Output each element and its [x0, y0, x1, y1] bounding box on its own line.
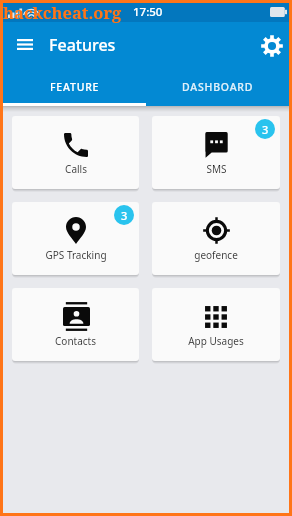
button[interactable]: FEATURE: [3, 70, 146, 103]
button[interactable]: DASHBOARD: [146, 70, 289, 103]
staticText: 3: [262, 122, 269, 137]
staticText: SMS: [206, 162, 227, 176]
button[interactable]: Settings: [256, 30, 288, 62]
staticText: Calls: [65, 162, 87, 176]
staticText: 17:50: [133, 4, 163, 20]
staticText: DASHBOARD: [182, 80, 254, 94]
staticText: hackcheat.org: [3, 1, 122, 23]
button[interactable]: geofence: [152, 202, 280, 275]
staticText: FEATURE: [50, 80, 100, 94]
button[interactable]: Calls: [12, 116, 139, 189]
staticText: GPS Tracking: [45, 248, 107, 262]
button[interactable]: SMS: [152, 116, 280, 189]
button[interactable]: GPS Tracking: [12, 202, 139, 275]
staticText: Contacts: [55, 334, 96, 348]
button[interactable]: Contacts: [12, 288, 139, 361]
staticText: Features: [49, 34, 116, 56]
staticText: geofence: [194, 248, 238, 262]
button[interactable]: App Usages: [152, 288, 280, 361]
button[interactable]: Open navigation menu: [10, 31, 40, 61]
staticText: App Usages: [188, 334, 244, 348]
staticText: 3: [121, 208, 128, 223]
